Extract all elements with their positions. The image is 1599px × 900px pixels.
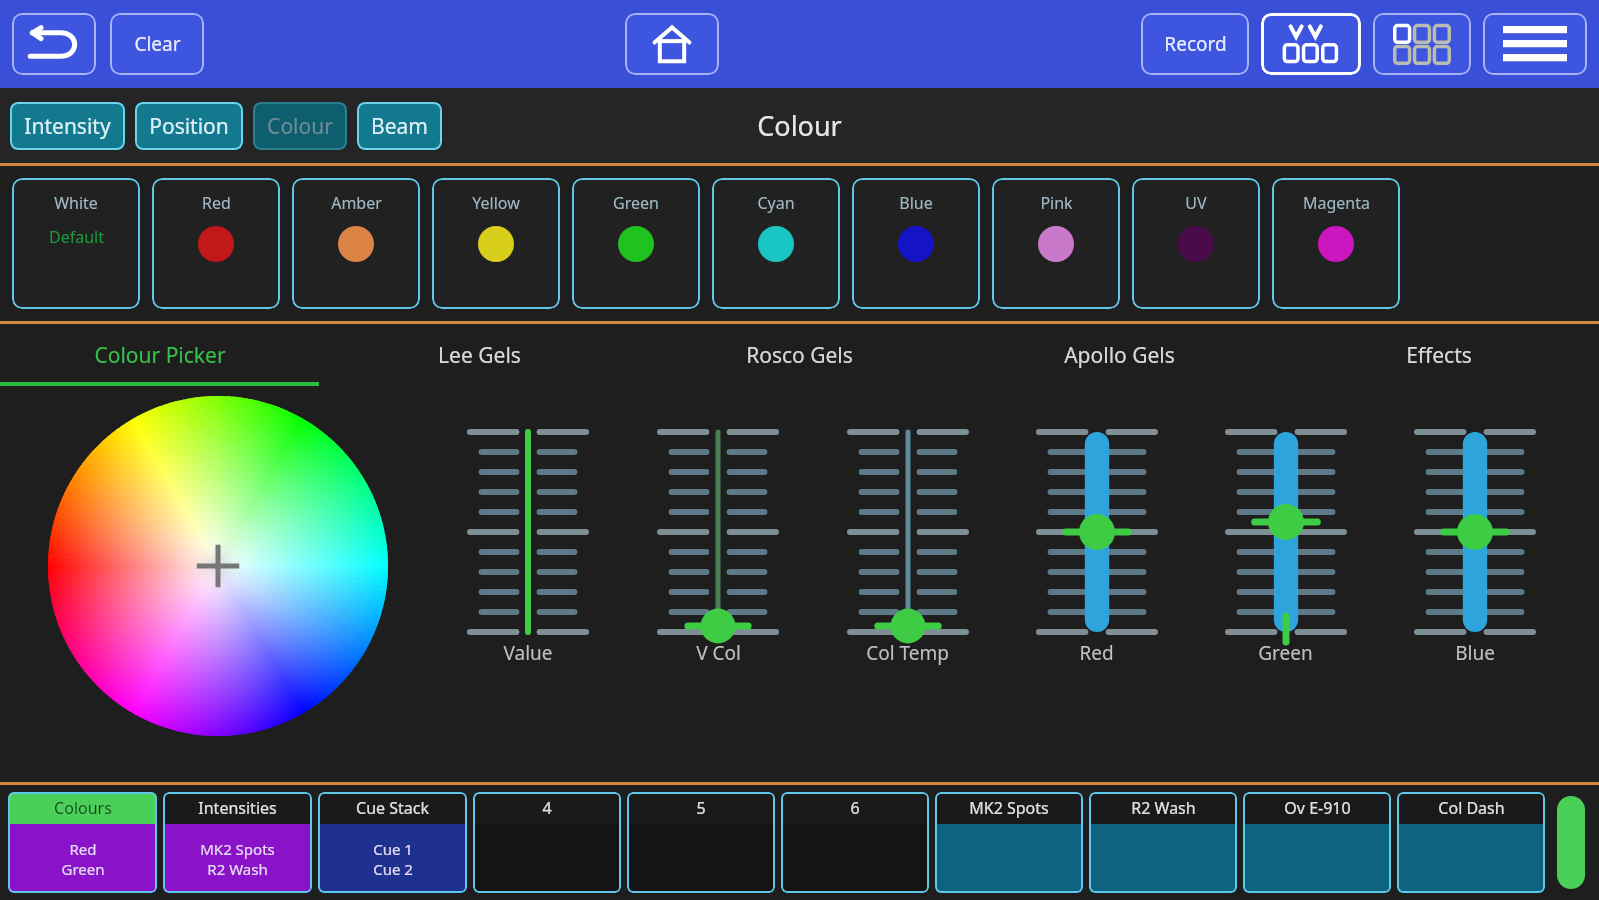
staticText: Rosco Gels (746, 341, 853, 370)
button[interactable]: Value (433, 432, 623, 782)
staticText: Ov E-910 (1284, 797, 1351, 819)
staticText: Intensity (24, 112, 111, 141)
button[interactable]: Blue (852, 178, 980, 309)
staticText: Cue 2 (373, 859, 413, 879)
staticText: Colour Picker (94, 341, 226, 370)
staticText: Lee Gels (438, 341, 521, 370)
button[interactable]: Colour (253, 102, 347, 150)
button[interactable]: Col Temp (813, 432, 1002, 782)
staticText: Default (49, 226, 104, 248)
staticText: Position (149, 112, 229, 141)
staticText: V Col (696, 640, 741, 666)
button[interactable]: 4 (473, 792, 621, 893)
button[interactable]: Ov E-910 (1243, 792, 1391, 893)
button[interactable]: Cyan (712, 178, 840, 309)
button[interactable]: Home (625, 13, 719, 75)
staticText: Beam (371, 112, 428, 141)
button[interactable]: White (12, 178, 140, 309)
staticText: Colours (54, 797, 112, 819)
button[interactable]: Effects (1279, 324, 1599, 386)
button[interactable]: Menu (1483, 13, 1587, 75)
staticText: 5 (696, 797, 706, 819)
staticText: 4 (542, 797, 552, 819)
staticText: Colour (267, 112, 333, 141)
staticText: Intensities (198, 797, 277, 819)
button[interactable]: Red (1002, 432, 1191, 782)
button[interactable]: Pink (992, 178, 1120, 309)
button[interactable]: Green (1191, 432, 1380, 782)
staticText: 6 (850, 797, 860, 819)
button[interactable]: MK2 Spots (935, 792, 1083, 893)
staticText: Cue Stack (356, 797, 429, 819)
button[interactable]: Apollo Gels (959, 324, 1279, 386)
button[interactable]: R2 Wash (1089, 792, 1237, 893)
staticText: Red (202, 192, 231, 214)
staticText: Red (69, 839, 97, 859)
button[interactable]: Grid (1373, 13, 1471, 75)
staticText: Clear (134, 31, 181, 57)
button[interactable]: Intensities (163, 792, 312, 893)
button[interactable]: Lee Gels (319, 324, 639, 386)
staticText: Record (1164, 31, 1227, 57)
button[interactable]: Master fader (1557, 796, 1585, 889)
staticText: Red (1079, 640, 1114, 666)
button[interactable]: Beam (357, 102, 442, 150)
staticText: R2 Wash (1131, 797, 1196, 819)
staticText: Blue (899, 192, 933, 214)
staticText: Green (613, 192, 659, 214)
staticText: Apollo Gels (1064, 341, 1175, 370)
staticText: Yellow (472, 192, 520, 214)
staticText: Cue 1 (373, 839, 413, 859)
button[interactable]: Rosco Gels (639, 324, 959, 386)
staticText: Col Temp (866, 640, 949, 666)
button[interactable]: Colour Picker (0, 324, 319, 386)
staticText: MK2 Spots (969, 797, 1049, 819)
staticText: Green (1258, 640, 1313, 666)
button[interactable]: Position (135, 102, 243, 150)
button[interactable]: Green (572, 178, 700, 309)
button[interactable]: Col Dash (1397, 792, 1545, 893)
staticText: UV (1185, 192, 1207, 214)
staticText: Value (503, 640, 553, 666)
button[interactable]: Faders (1261, 13, 1361, 75)
staticText: Cyan (757, 192, 795, 214)
button[interactable]: Yellow (432, 178, 560, 309)
button[interactable]: 6 (781, 792, 929, 893)
button[interactable]: Record (1141, 13, 1249, 75)
button[interactable]: Magenta (1272, 178, 1400, 309)
button[interactable]: Blue (1380, 432, 1569, 782)
button[interactable]: Amber (292, 178, 420, 309)
staticText: Colour (757, 107, 842, 144)
button[interactable]: Undo (12, 13, 96, 75)
staticText: Green (61, 859, 105, 879)
staticText: White (54, 192, 98, 214)
staticText: MK2 Spots (200, 839, 275, 859)
staticText: R2 Wash (207, 859, 268, 879)
button[interactable]: Red (152, 178, 280, 309)
button[interactable]: V Col (623, 432, 813, 782)
button[interactable]: 5 (627, 792, 775, 893)
button[interactable]: Clear (110, 13, 204, 75)
staticText: Amber (331, 192, 382, 214)
staticText: Pink (1040, 192, 1073, 214)
button[interactable]: Intensity (10, 102, 125, 150)
staticText: Magenta (1303, 192, 1370, 214)
button[interactable]: Cue Stack (318, 792, 467, 893)
button[interactable]: Colours (8, 792, 157, 893)
button[interactable]: UV (1132, 178, 1260, 309)
staticText: Col Dash (1438, 797, 1505, 819)
staticText: Blue (1455, 640, 1495, 666)
staticText: Effects (1406, 341, 1472, 370)
